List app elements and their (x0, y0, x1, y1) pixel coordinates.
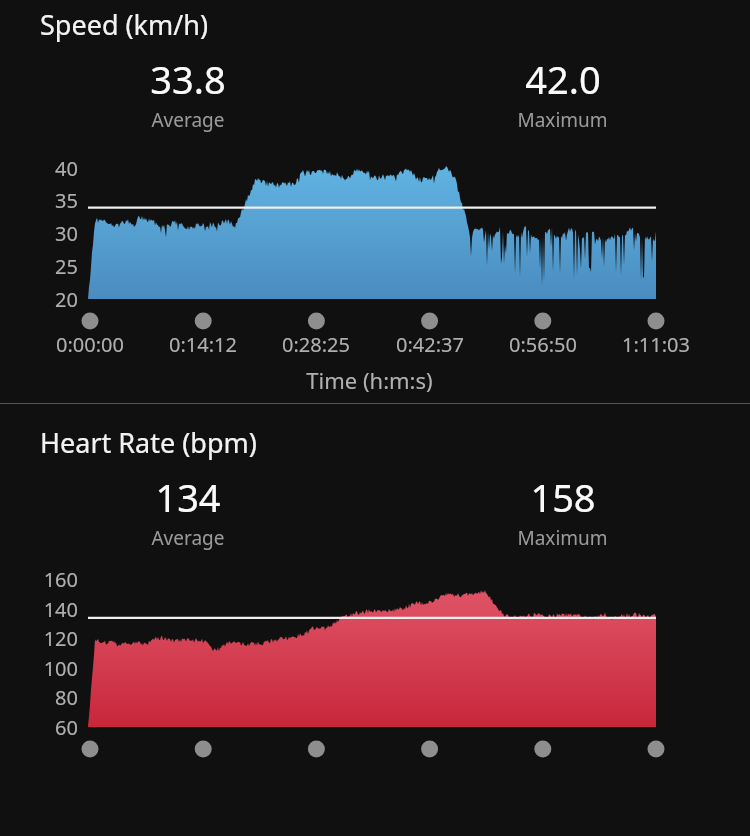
staticText: 0:28:25 (282, 331, 350, 358)
staticText: Maximum (517, 525, 608, 551)
staticText: 33.8 (150, 53, 226, 105)
staticText: Heart Rate (bpm) (40, 424, 257, 461)
staticText: 60 (55, 714, 78, 741)
staticText: 0:56:50 (509, 331, 577, 358)
staticText: Speed (km/h) (40, 6, 209, 43)
staticText: 0:00:00 (56, 331, 124, 358)
staticText: 80 (55, 684, 78, 711)
staticText: 120 (43, 625, 78, 652)
staticText: 134 (155, 471, 221, 523)
button[interactable]: 158 (375, 471, 750, 551)
staticText: Maximum (517, 107, 608, 133)
staticText: 0:14:12 (169, 331, 237, 358)
staticText: 42.0 (525, 53, 601, 105)
button[interactable]: Chart (0, 575, 750, 727)
staticText: 1:11:03 (622, 331, 690, 358)
button[interactable]: Chart (0, 157, 750, 299)
button[interactable]: Speed (km/h) (0, 2, 750, 43)
staticText: 40 (55, 155, 78, 182)
button[interactable]: 42.0 (375, 53, 750, 133)
staticText: 0:42:37 (396, 331, 464, 358)
staticText: 160 (43, 566, 78, 593)
staticText: 30 (55, 220, 78, 247)
staticText: 158 (530, 471, 596, 523)
staticText: 100 (43, 655, 78, 682)
button[interactable]: 134 (0, 471, 375, 551)
staticText: Time (h:m:s) (306, 365, 433, 395)
staticText: Average (151, 107, 225, 133)
button[interactable]: Heart Rate (bpm) (0, 420, 750, 461)
staticText: 20 (55, 286, 78, 313)
staticText: 25 (55, 253, 78, 280)
staticText: Average (151, 525, 225, 551)
staticText: 35 (55, 187, 78, 214)
staticText: 140 (43, 596, 78, 623)
button[interactable]: 33.8 (0, 53, 375, 133)
